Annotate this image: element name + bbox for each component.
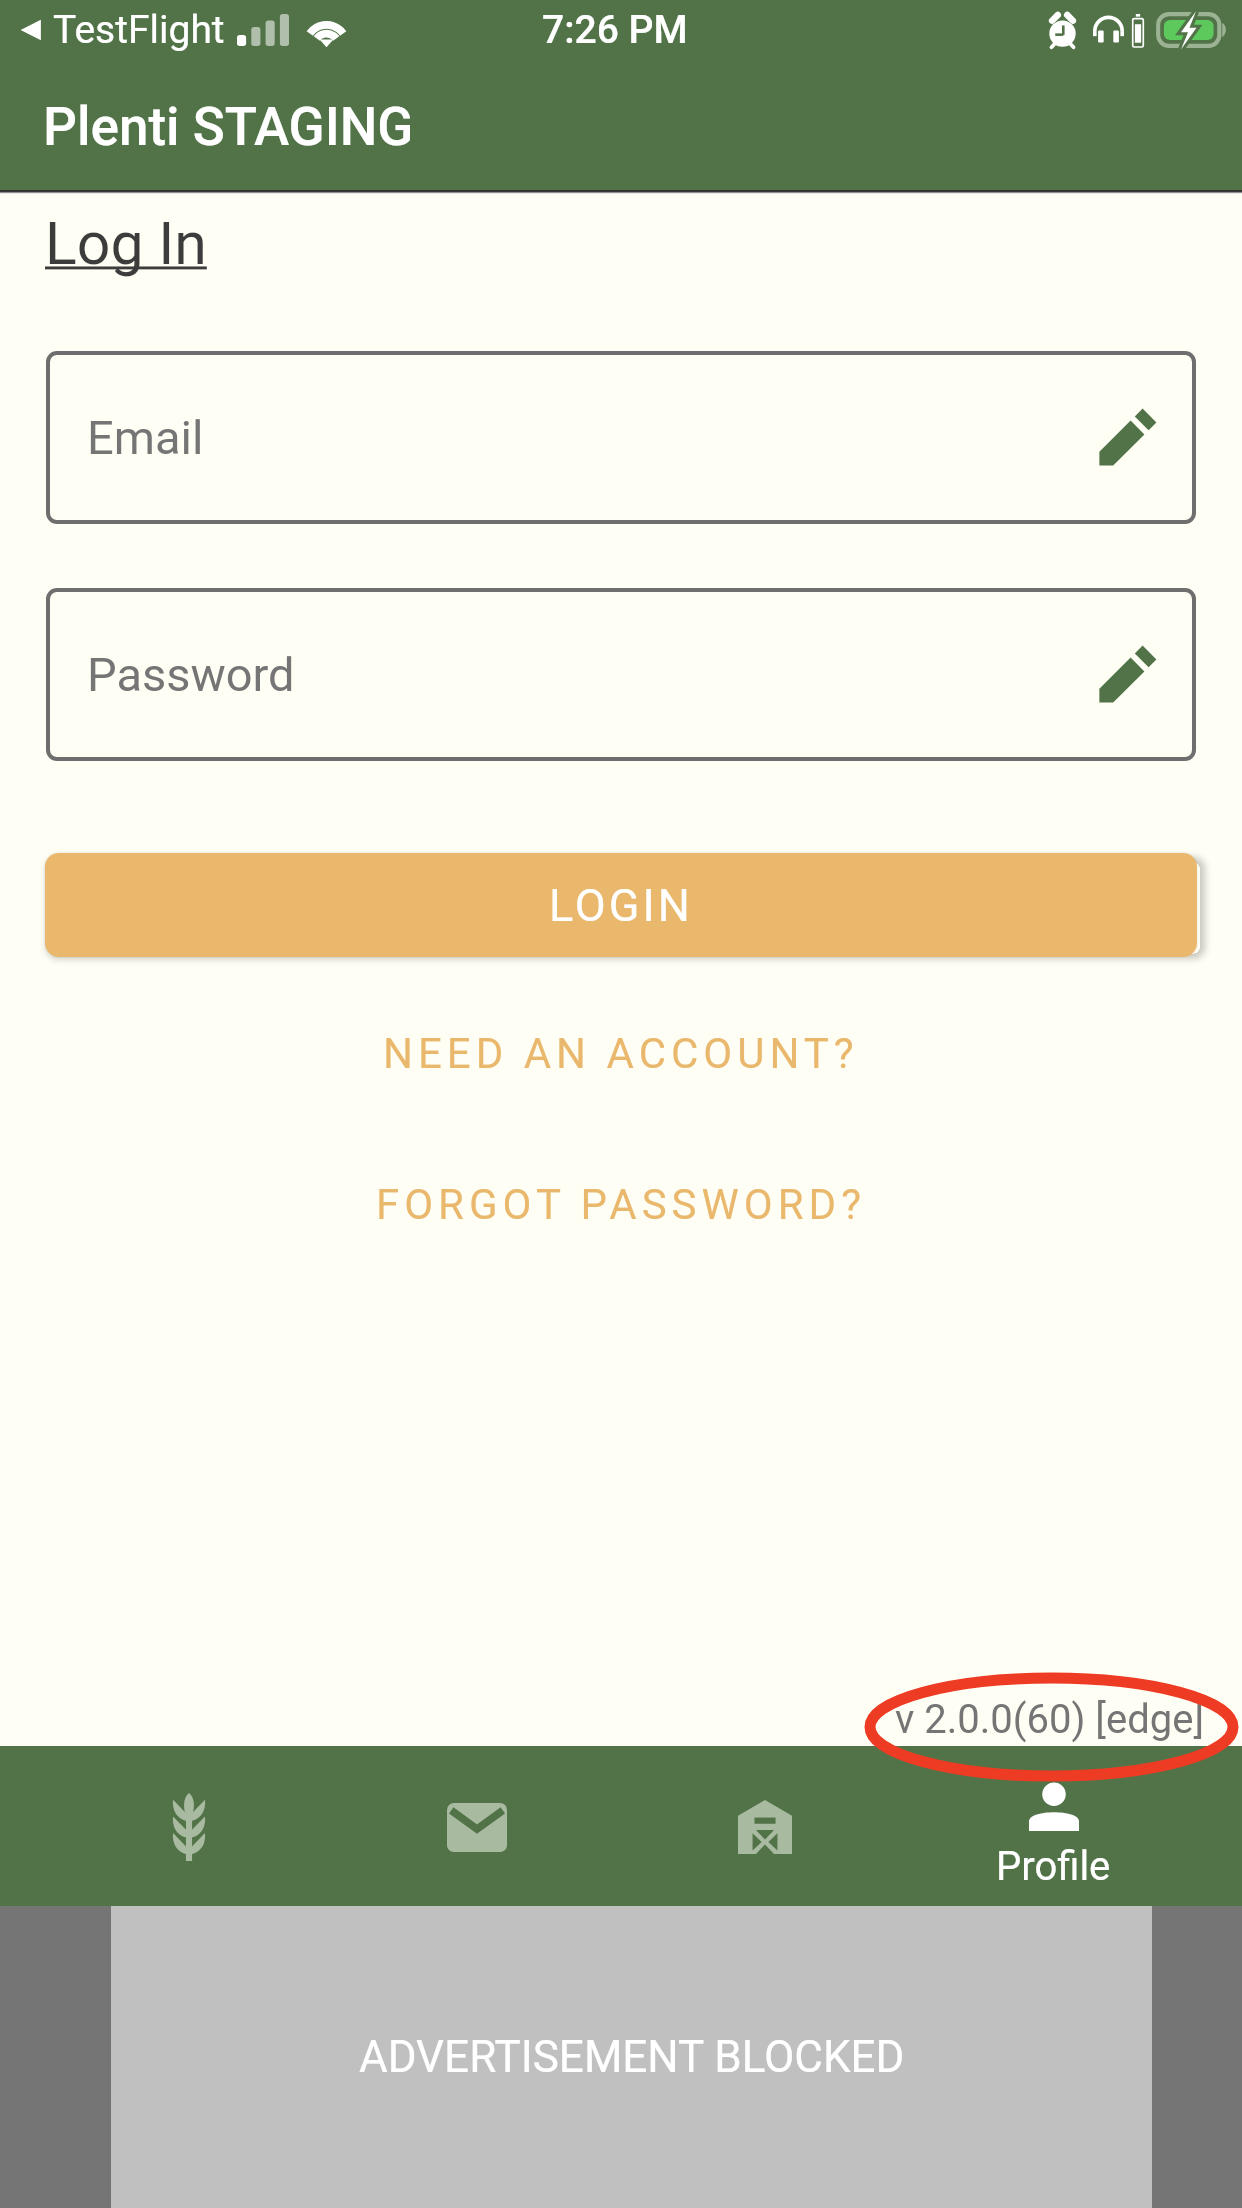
button[interactable]: LOGIN xyxy=(45,853,1197,957)
staticText: Plenti STAGING xyxy=(43,96,414,158)
other: Edit xyxy=(1096,644,1158,706)
staticText: Password xyxy=(87,647,295,702)
staticText: Profile xyxy=(996,1843,1111,1890)
button[interactable]: Password xyxy=(46,588,1196,761)
button[interactable]: Crops xyxy=(45,1746,333,1906)
staticText: NEED AN ACCOUNT? xyxy=(383,1029,859,1078)
other: Edit xyxy=(1096,407,1158,469)
staticText: FORGOT PASSWORD? xyxy=(376,1180,866,1229)
staticText: LOGIN xyxy=(549,879,693,932)
staticText: TestFlight xyxy=(53,7,225,53)
staticText: v 2.0.0(60) [edge] xyxy=(895,1696,1204,1743)
button[interactable]: Messages xyxy=(333,1746,621,1906)
button[interactable]: NEED AN ACCOUNT? xyxy=(363,1019,879,1088)
button[interactable]: Profile xyxy=(909,1746,1197,1906)
button[interactable]: FORGOT PASSWORD? xyxy=(356,1170,886,1239)
staticText: Email xyxy=(87,410,204,465)
button[interactable]: Email xyxy=(46,351,1196,524)
staticText: ADVERTISEMENT BLOCKED xyxy=(359,2031,905,2083)
staticText: Log In xyxy=(45,209,207,278)
button[interactable]: Barn xyxy=(621,1746,909,1906)
staticText: 7:26 PM xyxy=(542,7,688,53)
